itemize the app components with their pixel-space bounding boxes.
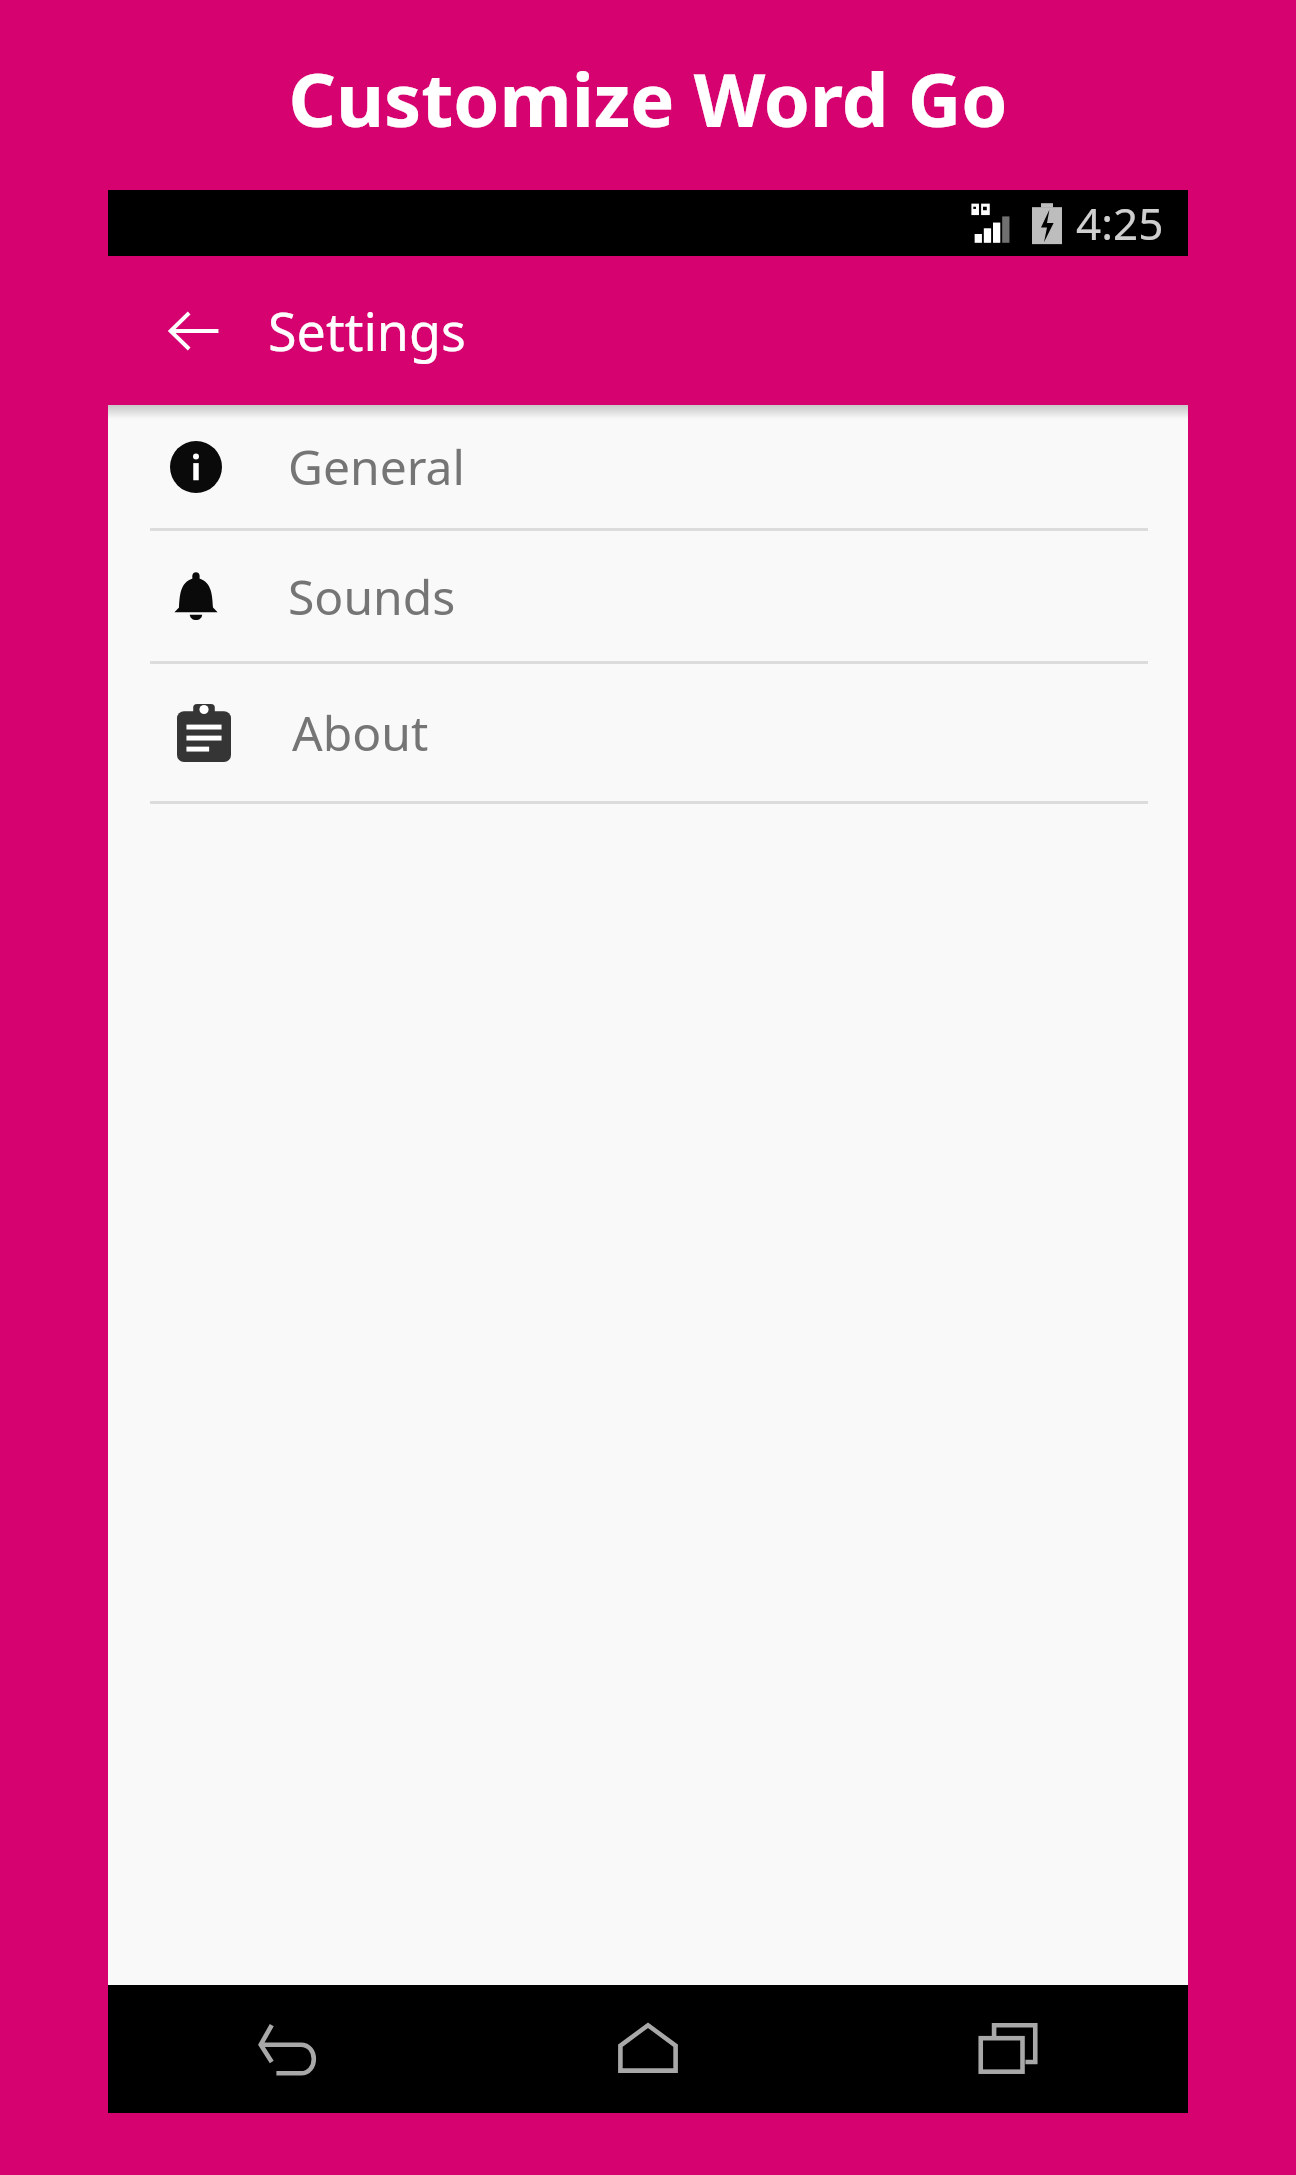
button[interactable]: Back (108, 1985, 468, 2113)
button[interactable]: Sounds (108, 531, 1188, 661)
button[interactable]: Back (146, 283, 242, 379)
staticText: Sounds (288, 564, 456, 629)
staticText: General (288, 434, 465, 499)
staticText: Settings (268, 295, 466, 366)
button[interactable]: Home (468, 1985, 828, 2113)
staticText: About (292, 700, 429, 765)
staticText: Customize Word Go (0, 48, 1296, 149)
button[interactable]: General (108, 405, 1188, 528)
staticText: 4:25 (1076, 193, 1164, 253)
button[interactable]: Recent apps (828, 1985, 1188, 2113)
button[interactable]: About (108, 664, 1188, 801)
